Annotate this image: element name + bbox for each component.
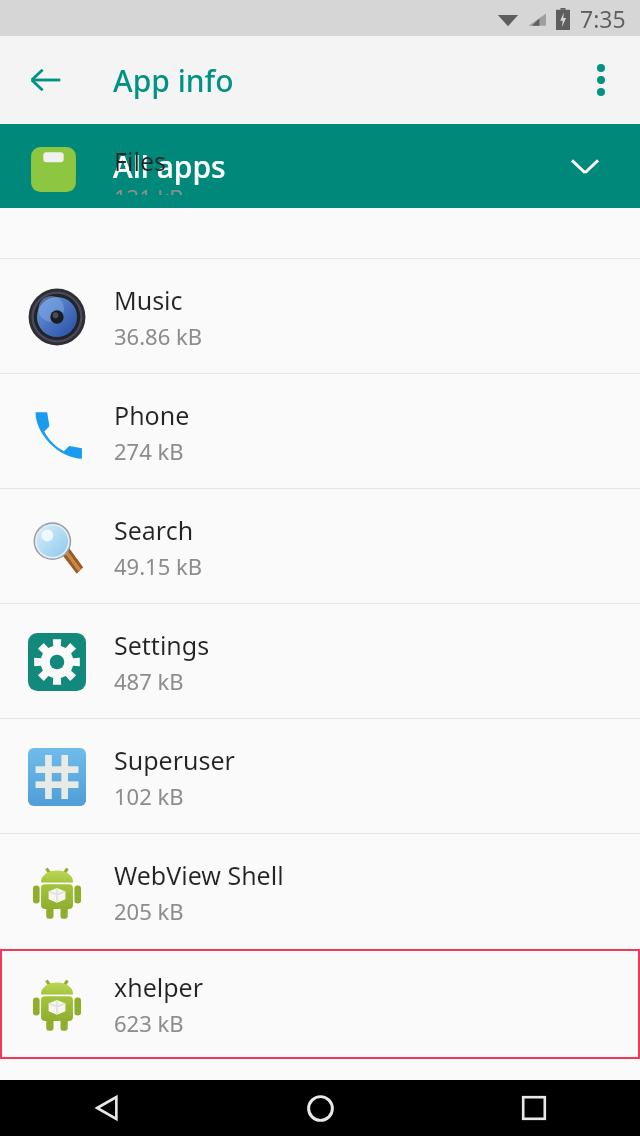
button[interactable]: Back: [0, 1080, 214, 1136]
staticText: Search: [114, 513, 194, 547]
staticText: WebView Shell: [114, 858, 284, 892]
button[interactable]: Settings: [0, 604, 640, 719]
staticText: Phone: [114, 398, 190, 432]
staticText: Music: [114, 283, 183, 317]
staticText: 487 kB: [114, 666, 184, 696]
staticText: 623 kB: [114, 1008, 184, 1038]
staticText: 7:35: [580, 3, 626, 34]
staticText: Settings: [114, 628, 210, 662]
staticText: Superuser: [114, 743, 235, 777]
staticText: 102 kB: [114, 781, 184, 811]
staticText: 36.86 kB: [114, 321, 203, 351]
staticText: xhelper: [114, 970, 204, 1004]
staticText: 49.15 kB: [114, 551, 203, 581]
staticText: 205 kB: [114, 896, 184, 926]
button[interactable]: Recent apps: [427, 1080, 640, 1136]
button[interactable]: Phone: [0, 374, 640, 489]
button[interactable]: More options: [572, 51, 630, 109]
staticText: App info: [113, 60, 234, 101]
button[interactable]: Music: [0, 259, 640, 374]
button[interactable]: All apps: [0, 124, 640, 208]
button[interactable]: xhelper: [0, 949, 640, 1059]
button[interactable]: Superuser: [0, 719, 640, 834]
staticText: All apps: [113, 146, 226, 187]
button[interactable]: Search: [0, 489, 640, 604]
button[interactable]: Back: [14, 48, 78, 112]
staticText: Files: [114, 144, 166, 178]
staticText: 274 kB: [114, 436, 184, 466]
staticText: 131 kB: [114, 182, 184, 195]
button[interactable]: Files: [0, 208, 640, 259]
button[interactable]: WebView Shell: [0, 834, 640, 949]
button[interactable]: Home: [214, 1080, 427, 1136]
